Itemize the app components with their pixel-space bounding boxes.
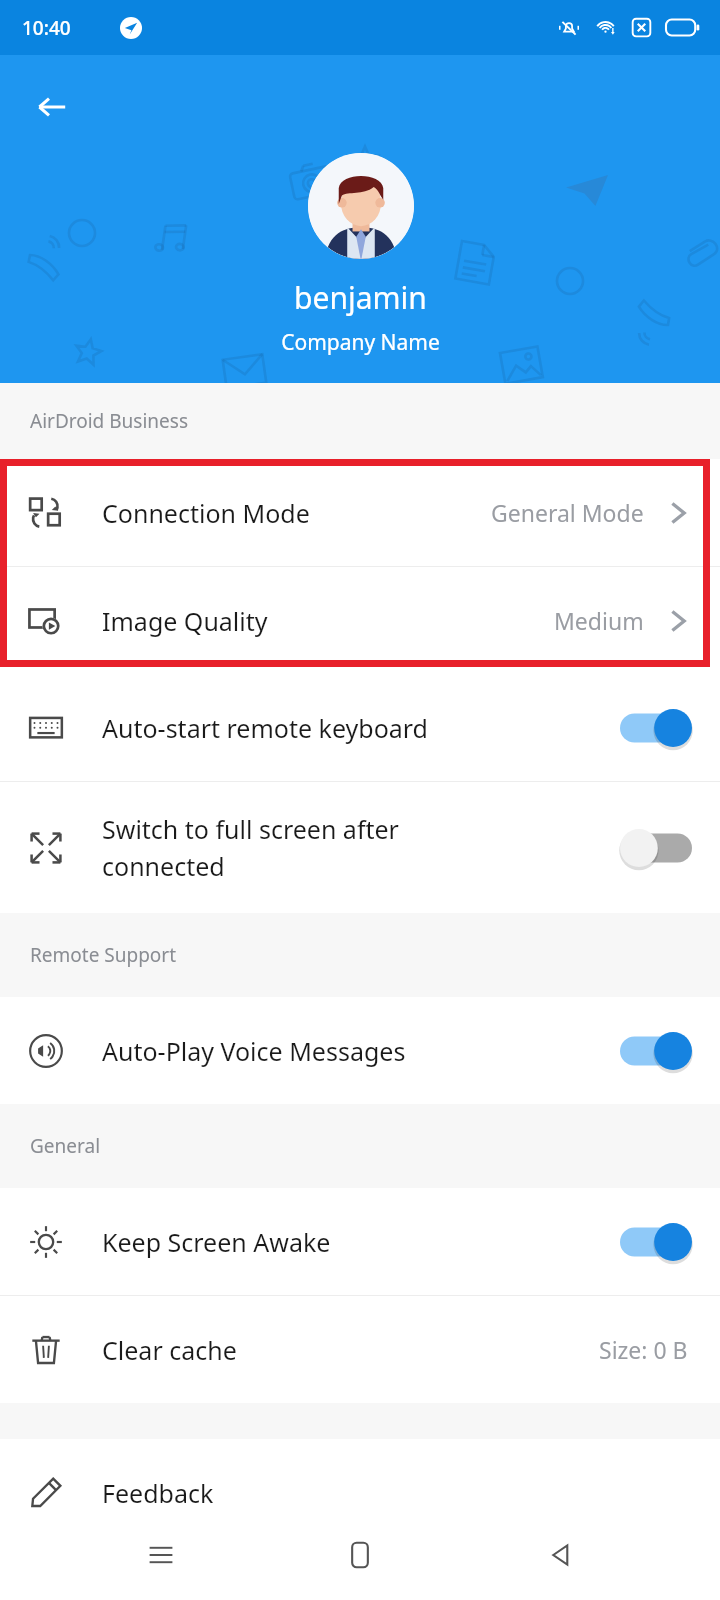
button[interactable]: Auto-start remote keyboard: [620, 706, 692, 750]
button[interactable]: Auto-Play Voice Messages: [0, 997, 720, 1104]
staticText: Keep Screen Awake: [102, 1225, 608, 1259]
button[interactable]: Image Quality: [0, 567, 720, 674]
staticText: Auto-start remote keyboard: [102, 711, 608, 745]
button[interactable]: Auto-Play Voice Messages: [620, 1029, 692, 1073]
staticText: Medium: [554, 605, 644, 636]
staticText: Size: 0 B: [599, 1334, 688, 1365]
staticText: Image Quality: [102, 604, 554, 638]
button[interactable]: Auto-start remote keyboard: [0, 674, 720, 781]
staticText: 10:40: [22, 15, 71, 41]
button[interactable]: Feedback: [0, 1439, 720, 1546]
staticText: General Mode: [491, 497, 644, 528]
button[interactable]: Home: [321, 1516, 399, 1594]
button[interactable]: Recents: [122, 1516, 200, 1594]
staticText: General: [30, 1133, 101, 1159]
staticText: Clear cache: [102, 1333, 599, 1367]
button[interactable]: Keep Screen Awake: [620, 1220, 692, 1264]
button[interactable]: Switch to full screen after connected: [0, 782, 720, 913]
staticText: Connection Mode: [102, 496, 491, 530]
button[interactable]: Clear cache: [0, 1296, 720, 1403]
button[interactable]: Back: [24, 79, 80, 135]
button[interactable]: Connection Mode: [0, 459, 720, 566]
staticText: AirDroid Business: [30, 408, 189, 434]
staticText: Switch to full screen after connected: [102, 812, 608, 883]
staticText: Remote Support: [30, 942, 177, 968]
staticText: Company Name: [281, 328, 440, 357]
button[interactable]: Switch to full screen after connected: [620, 826, 692, 870]
staticText: benjamin: [294, 277, 427, 318]
button[interactable]: Keep Screen Awake: [0, 1188, 720, 1295]
button[interactable]: Back: [521, 1516, 599, 1594]
staticText: Auto-Play Voice Messages: [102, 1034, 608, 1068]
staticText: Feedback: [102, 1476, 688, 1510]
